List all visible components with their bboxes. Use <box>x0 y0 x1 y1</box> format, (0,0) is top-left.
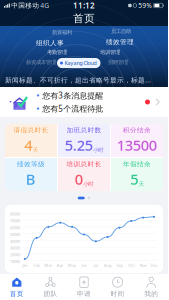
staticText: 首页 <box>10 290 24 298</box>
staticText: Oct <box>128 262 134 268</box>
staticText: Jan <box>22 262 27 268</box>
staticText: 您有3条消息提醒 <box>42 90 103 101</box>
staticText: 小时 <box>93 147 103 153</box>
staticText: Apr <box>57 262 64 268</box>
staticText: 5 <box>130 169 138 189</box>
staticText: 天 <box>33 147 38 153</box>
staticText: 新资福利 <box>52 29 72 36</box>
staticText: 小时 <box>83 181 93 187</box>
staticText: 培训总时长 <box>66 160 101 168</box>
staticText: 新闻标题、不可折行，超出省略号显示，标题始终左对齐 <box>5 76 157 84</box>
staticText: 10000 <box>10 259 20 264</box>
staticText: 13500 <box>117 135 157 155</box>
button[interactable]: 首页 <box>0 274 34 300</box>
staticText: 年假结余 <box>123 160 151 168</box>
button[interactable]: 申请 <box>67 274 101 300</box>
button[interactable]: 团队 <box>34 274 67 300</box>
staticText: 员工自助 <box>111 28 131 35</box>
staticText: 中国移动 <box>11 1 39 10</box>
button[interactable]: 绩效等级 <box>5 158 57 191</box>
staticText: 绩效等级 <box>17 160 45 168</box>
button[interactable]: 积分结余 <box>111 124 163 157</box>
staticText: 绩效管理 <box>106 38 134 46</box>
staticText: 59% <box>138 1 152 10</box>
staticText: 请假总时长 <box>13 126 48 134</box>
staticText: 80000 <box>10 211 20 217</box>
button[interactable]: 请假总时长 <box>5 124 57 157</box>
staticText: 30000 <box>10 245 20 250</box>
staticText: Aug <box>104 262 111 268</box>
staticText: 70000 <box>10 218 20 223</box>
staticText: 我的 <box>144 290 158 298</box>
button[interactable]: 您有3条消息提醒 <box>0 87 168 117</box>
staticText: 考勤管理 <box>47 49 67 56</box>
staticText: 4 <box>24 135 32 155</box>
staticText: 5.25 <box>65 135 93 155</box>
staticText: 团队 <box>43 290 57 298</box>
button[interactable]: 培训总时长 <box>58 158 110 191</box>
staticText: 40000 <box>10 238 20 244</box>
staticText: 申请 <box>77 290 91 298</box>
staticText: Sep <box>116 262 122 268</box>
staticText: 11:12 <box>73 0 95 11</box>
button[interactable]: 我的 <box>134 274 168 300</box>
staticText: 60000 <box>10 225 20 230</box>
staticText: 薪资成本管理 <box>26 59 56 66</box>
staticText: 积分结余 <box>123 126 151 134</box>
staticText: 招聘管理 <box>108 59 128 66</box>
staticText: 您有5个流程待批 <box>42 103 103 114</box>
staticText: 4G <box>40 1 49 10</box>
button[interactable]: 年假结余 <box>111 158 163 191</box>
staticText: 培训管理 <box>100 49 120 56</box>
staticText: Jul <box>94 262 98 268</box>
staticText: Mar <box>44 262 52 268</box>
button[interactable]: 时间 <box>101 274 134 300</box>
staticText: 0 <box>75 169 83 189</box>
staticText: Jun <box>81 262 86 268</box>
staticText: Feb <box>34 262 40 268</box>
staticText: B <box>26 169 36 189</box>
staticText: 首页 <box>73 12 95 25</box>
staticText: 20000 <box>10 252 20 257</box>
staticText: 50000 <box>10 232 20 237</box>
staticText: 时间 <box>111 290 125 298</box>
staticText: Dec <box>151 262 158 268</box>
staticText: 天 <box>139 181 144 187</box>
staticText: 加班总时数 <box>66 126 101 134</box>
button[interactable]: 加班总时数 <box>58 124 110 157</box>
staticText: 组织人事 <box>36 39 64 47</box>
staticText: Nov <box>140 262 147 268</box>
staticText: Kayang Cloud <box>64 59 96 67</box>
staticText: May <box>68 262 76 268</box>
